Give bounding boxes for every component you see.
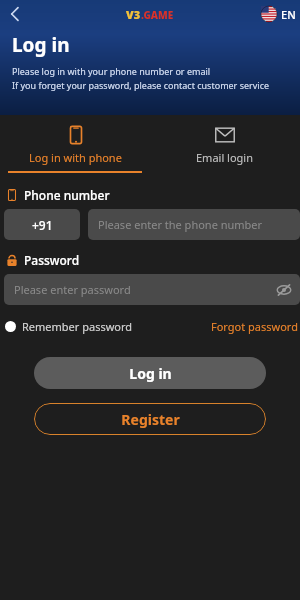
button[interactable]: Email login	[150, 115, 300, 173]
button[interactable]: Please enter the phone number	[88, 209, 300, 240]
button[interactable]: Back	[0, 0, 30, 28]
button[interactable]: Log in	[34, 357, 266, 389]
staticText: Log in	[12, 32, 70, 58]
button[interactable]: Forgot password	[211, 319, 298, 334]
staticText: Log in with phone	[29, 150, 122, 165]
staticText: If you forget your password, please cont…	[12, 79, 270, 91]
staticText: EN	[281, 7, 296, 22]
button[interactable]: +91	[4, 209, 80, 240]
button[interactable]: Please enter password	[4, 274, 300, 305]
staticText: Please enter password	[14, 282, 131, 297]
button[interactable]: EN	[261, 6, 296, 22]
button[interactable]: Log in with phone	[0, 115, 150, 173]
staticText: V3	[126, 7, 141, 22]
staticText: Email login	[196, 150, 254, 165]
staticText: Register	[121, 410, 180, 429]
staticText: Phone number	[24, 187, 110, 203]
staticText: .GAME	[141, 8, 174, 22]
staticText: Password	[24, 252, 80, 268]
staticText: Forgot password	[211, 319, 298, 334]
staticText: +91	[32, 217, 53, 233]
button[interactable]: Register	[34, 403, 266, 435]
button[interactable]: Show password	[274, 280, 294, 300]
staticText: Please enter the phone number	[98, 217, 263, 232]
button[interactable]: Remember password	[5, 319, 133, 334]
staticText: Please log in with your phone number or …	[12, 65, 211, 77]
staticText: Remember password	[22, 319, 133, 334]
staticText: Log in	[129, 364, 172, 383]
